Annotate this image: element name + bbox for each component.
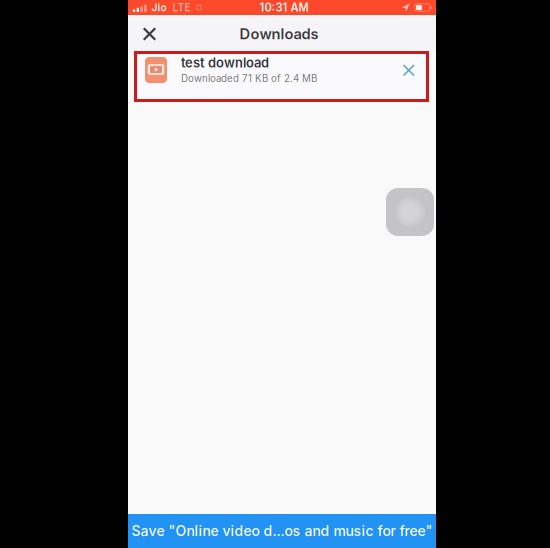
staticText: LTE (172, 1, 190, 14)
button[interactable]: AssistiveTouch (386, 188, 434, 236)
staticText: Jio (151, 1, 166, 14)
button[interactable]: Close (128, 15, 171, 51)
staticText: Downloads (239, 25, 318, 43)
button[interactable]: test download (137, 54, 426, 99)
staticText: test download (181, 55, 269, 71)
staticText: 10:31 AM (259, 1, 308, 14)
button[interactable]: Save "Online video d...os and music for … (128, 514, 436, 548)
staticText: Downloaded 71 KB of 2.4 MB (181, 73, 317, 84)
button[interactable]: Cancel download (403, 57, 426, 75)
staticText: Save "Online video d...os and music for … (131, 522, 432, 539)
